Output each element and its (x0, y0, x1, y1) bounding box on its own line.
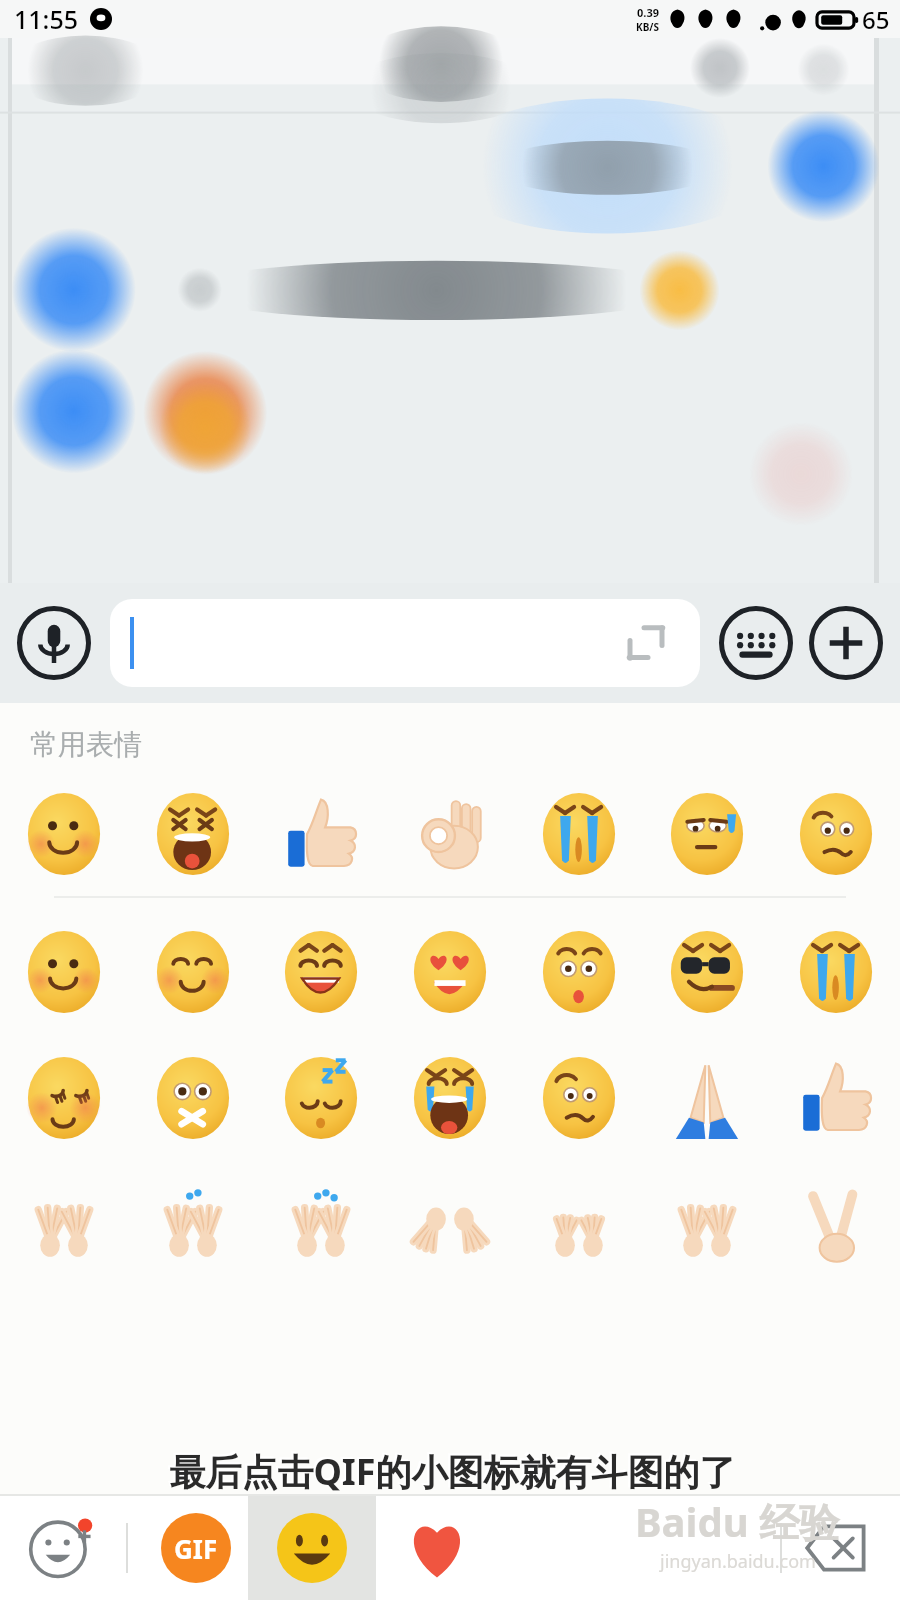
button[interactable]: Add sticker (18, 1504, 106, 1592)
staticText: jingyan.baidu.com (660, 1549, 816, 1574)
button[interactable]: Emoji (786, 922, 886, 1022)
button[interactable]: Emoji (786, 1048, 886, 1148)
staticText: 65 (862, 3, 890, 36)
staticText: 0.39 (637, 5, 659, 20)
button[interactable]: Emoji (14, 784, 114, 884)
button[interactable]: Keyboard (718, 605, 794, 681)
button[interactable]: Emoji (271, 784, 371, 884)
button[interactable] (110, 599, 700, 687)
button[interactable]: Backspace (788, 1500, 884, 1596)
button[interactable]: Favourites (382, 1496, 492, 1600)
button[interactable]: Emoji (271, 1174, 371, 1274)
staticText: Baidu 经验 (635, 1494, 840, 1549)
staticText: 常用表情 (30, 727, 142, 762)
button[interactable]: Emoji (400, 1174, 500, 1274)
button[interactable]: Emoji (143, 1048, 243, 1148)
button[interactable]: Emoji (529, 1174, 629, 1274)
button[interactable]: Emoji (657, 784, 757, 884)
button[interactable]: Emoji (14, 1174, 114, 1274)
button[interactable]: Emoji (271, 1048, 371, 1148)
button[interactable]: Emoji (529, 784, 629, 884)
button[interactable]: Emoji (786, 1174, 886, 1274)
button[interactable]: GIF (148, 1500, 244, 1596)
staticText: 最后点击QIF的小图标就有斗图的了 (169, 1447, 736, 1496)
button[interactable]: Emoji (14, 922, 114, 1022)
button[interactable]: Emoji (786, 784, 886, 884)
staticText: 11:55 (14, 2, 79, 36)
button[interactable]: Emoji (400, 784, 500, 884)
button[interactable]: Emoji (657, 1174, 757, 1274)
staticText: 最后点击QIF的小图标就有斗图的了 (167, 1445, 734, 1494)
button[interactable]: More (808, 605, 884, 681)
button[interactable]: Emoji (143, 1174, 243, 1274)
button[interactable]: Emoji (143, 784, 243, 884)
button[interactable]: Emoji (657, 1048, 757, 1148)
button[interactable]: Emoji (143, 922, 243, 1022)
button[interactable]: Emoji (400, 1048, 500, 1148)
staticText: GIF (174, 1531, 218, 1566)
button[interactable]: Emoji (271, 922, 371, 1022)
button[interactable]: Emoji (400, 922, 500, 1022)
button[interactable]: Emoji (529, 1048, 629, 1148)
button[interactable]: Emoji (657, 922, 757, 1022)
button[interactable]: Emoji (14, 1048, 114, 1148)
button[interactable]: Voice input (16, 605, 92, 681)
button[interactable]: Emoji (529, 922, 629, 1022)
staticText: KB/S (636, 20, 659, 34)
button[interactable]: Emoji (248, 1496, 376, 1600)
